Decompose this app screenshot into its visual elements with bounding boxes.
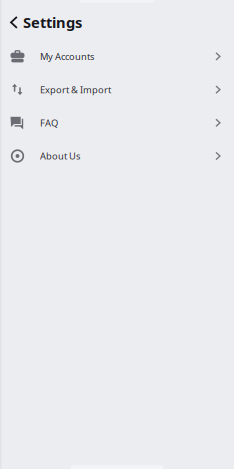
- staticText: My Accounts: [40, 50, 94, 63]
- button[interactable]: Back: [0, 9, 23, 35]
- staticText: About Us: [40, 150, 80, 162]
- staticText: Settings: [23, 13, 82, 32]
- staticText: Export & Import: [40, 83, 111, 96]
- button[interactable]: My Accounts: [0, 40, 234, 73]
- button[interactable]: FAQ: [0, 106, 234, 139]
- button[interactable]: Export & Import: [0, 73, 234, 106]
- staticText: FAQ: [40, 117, 58, 129]
- button[interactable]: About Us: [0, 139, 234, 173]
